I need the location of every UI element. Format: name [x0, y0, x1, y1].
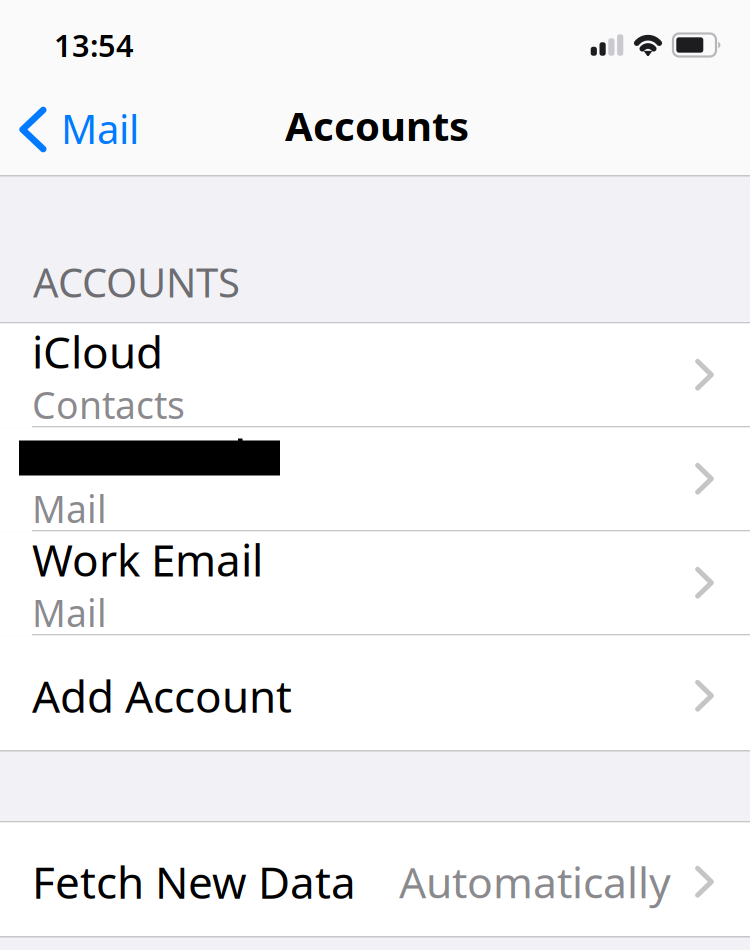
staticText: ACCOUNTS [33, 255, 240, 309]
button[interactable]: Mail account, Mail [0, 427, 750, 530]
staticText: Add Account [32, 666, 292, 725]
button[interactable]: Fetch New Data [0, 822, 750, 936]
staticText: Mail [32, 588, 107, 637]
staticText: iCloud [32, 322, 163, 381]
staticText: Mail [61, 102, 139, 155]
staticText: Accounts [285, 99, 469, 152]
staticText: Contacts [32, 380, 185, 429]
staticText: Mail [32, 484, 107, 533]
staticText: Fetch New Data [32, 852, 356, 911]
button[interactable]: Add Account [0, 635, 750, 750]
button[interactable]: Mail [0, 90, 157, 175]
staticText: 13:54 [54, 25, 134, 65]
staticText: Work Email [32, 530, 263, 589]
button[interactable]: Work Email, Mail [0, 531, 750, 634]
button[interactable]: iCloud, Contacts [0, 323, 750, 426]
staticText: Automatically [399, 853, 671, 910]
